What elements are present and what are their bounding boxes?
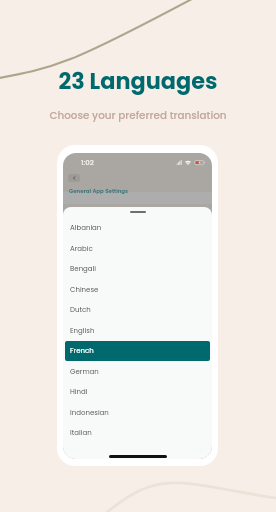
button[interactable]: German	[65, 362, 210, 382]
staticText: Choose your preferred translation	[49, 108, 227, 123]
staticText: Chinese	[70, 285, 99, 295]
staticText: 23 Languages	[58, 65, 218, 96]
button[interactable]: Albanian	[65, 218, 210, 238]
staticText: Bengali	[70, 264, 97, 274]
staticText: Indonesian	[70, 408, 109, 418]
staticText: English	[70, 326, 95, 336]
staticText: 1:02	[81, 158, 94, 168]
staticText: Dutch	[70, 305, 91, 315]
button[interactable]: Chinese	[65, 280, 210, 300]
button[interactable]: Indonesian	[65, 403, 210, 423]
staticText: General App Settings	[69, 187, 129, 195]
button[interactable]: Bengali	[65, 259, 210, 279]
staticText: Hindi	[70, 387, 88, 397]
button[interactable]: Dutch	[65, 300, 210, 320]
staticText: Albanian	[70, 223, 102, 233]
button[interactable]: Back	[68, 174, 80, 182]
staticText: German	[70, 367, 99, 377]
button[interactable]: Italian	[65, 423, 210, 443]
staticText: French	[70, 346, 94, 356]
staticText: Italian	[70, 428, 92, 438]
button[interactable]: Hindi	[65, 382, 210, 402]
staticText: Arabic	[70, 244, 93, 254]
button[interactable]: French	[65, 341, 210, 361]
button[interactable]: English	[65, 321, 210, 341]
button[interactable]: Arabic	[65, 239, 210, 259]
